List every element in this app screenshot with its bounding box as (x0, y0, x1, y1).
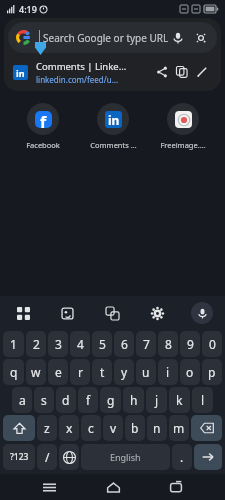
staticText: m (173, 420, 185, 436)
staticText: h (130, 392, 138, 408)
button[interactable]: Apps (12, 302, 34, 324)
staticText: Comments | Linke… (36, 60, 127, 73)
button[interactable]: Symbols (3, 444, 35, 470)
button[interactable]: 1 (3, 331, 24, 357)
button[interactable]: 7 (136, 331, 156, 357)
staticText: a (19, 392, 26, 408)
button[interactable]: r (70, 359, 90, 385)
staticText: f (40, 111, 47, 128)
staticText: i (166, 364, 170, 380)
button[interactable]: t (92, 359, 112, 385)
staticText: 2 (33, 336, 40, 352)
button[interactable]: c (81, 415, 101, 441)
button[interactable]: Period (172, 444, 192, 470)
button[interactable]: m (169, 415, 189, 441)
button[interactable]: f (10, 101, 75, 152)
button[interactable]: v (103, 415, 123, 441)
staticText: w (31, 364, 41, 380)
staticText: Freeimage.… (160, 140, 206, 150)
button[interactable]: h (123, 387, 144, 413)
button[interactable]: Settings (146, 302, 168, 324)
staticText: e (55, 364, 62, 380)
staticText: g (107, 392, 115, 408)
button[interactable]: Freeimage.… (151, 101, 215, 152)
button[interactable]: Shift (3, 415, 35, 441)
button[interactable]: Copy (172, 62, 192, 82)
button[interactable]: d (56, 387, 76, 413)
button[interactable]: 5 (92, 331, 112, 357)
button[interactable]: p (202, 359, 222, 385)
button[interactable]: l (192, 387, 213, 413)
staticText: z (44, 420, 50, 436)
button[interactable]: i (158, 359, 178, 385)
staticText: u (142, 364, 150, 380)
button[interactable]: e (48, 359, 68, 385)
staticText: 9 (187, 336, 194, 352)
staticText: d (62, 392, 70, 408)
staticText: 5 (99, 336, 106, 352)
button[interactable]: u (136, 359, 156, 385)
staticText: 6 (121, 336, 128, 352)
staticText: 8 (165, 336, 172, 352)
button[interactable]: b (125, 415, 145, 441)
button[interactable]: Google Lens (193, 29, 209, 47)
staticText: s (41, 392, 47, 408)
button[interactable]: 3 (48, 331, 68, 357)
button[interactable]: x (59, 415, 79, 441)
button[interactable]: n (147, 415, 167, 441)
button[interactable]: Translate (101, 302, 123, 324)
button[interactable]: g (100, 387, 121, 413)
staticText: ?123 (10, 451, 29, 463)
button[interactable]: 8 (158, 331, 178, 357)
button[interactable]: y (114, 359, 134, 385)
staticText: linkedin.com/feed/u… (36, 74, 119, 85)
staticText: v (110, 420, 117, 436)
button[interactable]: a (12, 387, 32, 413)
button[interactable]: Slash (37, 444, 57, 470)
button[interactable]: w (26, 359, 46, 385)
button[interactable]: 2 (26, 331, 46, 357)
button[interactable]: k (169, 387, 190, 413)
button[interactable]: f (78, 387, 98, 413)
staticText: c (88, 420, 94, 436)
button[interactable]: s (34, 387, 54, 413)
button[interactable]: j (146, 387, 167, 413)
staticText: English (110, 451, 141, 463)
button[interactable]: Language (59, 444, 79, 470)
staticText: 7 (143, 336, 150, 352)
button[interactable]: Voice input (191, 302, 213, 324)
button[interactable]: q (3, 359, 24, 385)
staticText: t (100, 364, 105, 380)
button[interactable]: o (180, 359, 200, 385)
staticText: 1 (10, 336, 17, 352)
button[interactable]: Recents (161, 474, 191, 500)
button[interactable]: Space (81, 444, 170, 470)
button[interactable]: Backspace (191, 415, 222, 441)
staticText: 3 (55, 336, 62, 352)
staticText: l (201, 392, 205, 408)
staticText: f (86, 392, 91, 408)
button[interactable]: 4 (70, 331, 90, 357)
button[interactable]: Home (98, 474, 128, 500)
button[interactable]: Stickers (56, 302, 78, 324)
staticText: 4 (77, 336, 84, 352)
staticText: . (180, 449, 184, 465)
staticText: in (108, 112, 120, 128)
staticText: 0 (209, 336, 216, 352)
button[interactable]: Enter (194, 444, 222, 470)
button[interactable]: Edit (192, 62, 212, 82)
button[interactable]: Voice search (169, 29, 187, 47)
button[interactable]: in (4, 57, 221, 87)
staticText: x (66, 420, 73, 436)
button[interactable]: z (37, 415, 57, 441)
button[interactable]: Search Google or type URL (8, 22, 217, 53)
button[interactable]: 0 (202, 331, 222, 357)
button[interactable]: Menu (34, 474, 64, 500)
button[interactable]: 6 (114, 331, 134, 357)
button[interactable]: Share (152, 62, 172, 82)
button[interactable]: 9 (180, 331, 200, 357)
button[interactable]: in (81, 101, 145, 152)
staticText: y (121, 364, 128, 380)
staticText: / (45, 449, 50, 465)
staticText: n (153, 420, 161, 436)
